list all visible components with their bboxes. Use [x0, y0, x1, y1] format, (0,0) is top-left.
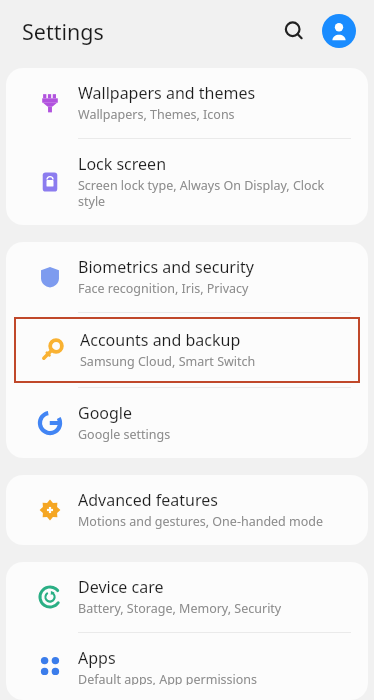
staticText: Google: [78, 402, 133, 424]
button[interactable]: Accounts and backup: [16, 319, 358, 381]
staticText: Device care: [78, 576, 164, 598]
button[interactable]: Advanced features: [14, 479, 360, 541]
staticText: Advanced features: [78, 489, 218, 511]
button[interactable]: Biometrics and security: [14, 246, 360, 308]
staticText: Settings: [22, 17, 104, 46]
staticText: Apps: [78, 647, 116, 669]
staticText: Battery, Storage, Memory, Security: [78, 600, 282, 617]
staticText: Biometrics and security: [78, 256, 255, 278]
staticText: Default apps, App permissions: [78, 671, 258, 685]
button[interactable]: Search: [274, 11, 314, 51]
staticText: Samsung Cloud, Smart Switch: [80, 353, 256, 370]
button[interactable]: Wallpapers and themes: [14, 72, 360, 134]
button[interactable]: Account: [322, 14, 356, 48]
staticText: Google settings: [78, 426, 171, 443]
staticText: Lock screen: [78, 153, 167, 175]
button[interactable]: Google: [14, 392, 360, 454]
button[interactable]: Apps: [14, 637, 360, 696]
staticText: Wallpapers and themes: [78, 82, 256, 104]
staticText: Motions and gestures, One-handed mode: [78, 513, 324, 530]
staticText: Wallpapers, Themes, Icons: [78, 106, 235, 123]
button[interactable]: Device care: [14, 566, 360, 628]
staticText: Screen lock type, Always On Display, Clo…: [78, 177, 352, 210]
staticText: Accounts and backup: [80, 329, 241, 351]
button[interactable]: Lock screen: [14, 143, 360, 221]
staticText: Face recognition, Iris, Privacy: [78, 280, 249, 297]
